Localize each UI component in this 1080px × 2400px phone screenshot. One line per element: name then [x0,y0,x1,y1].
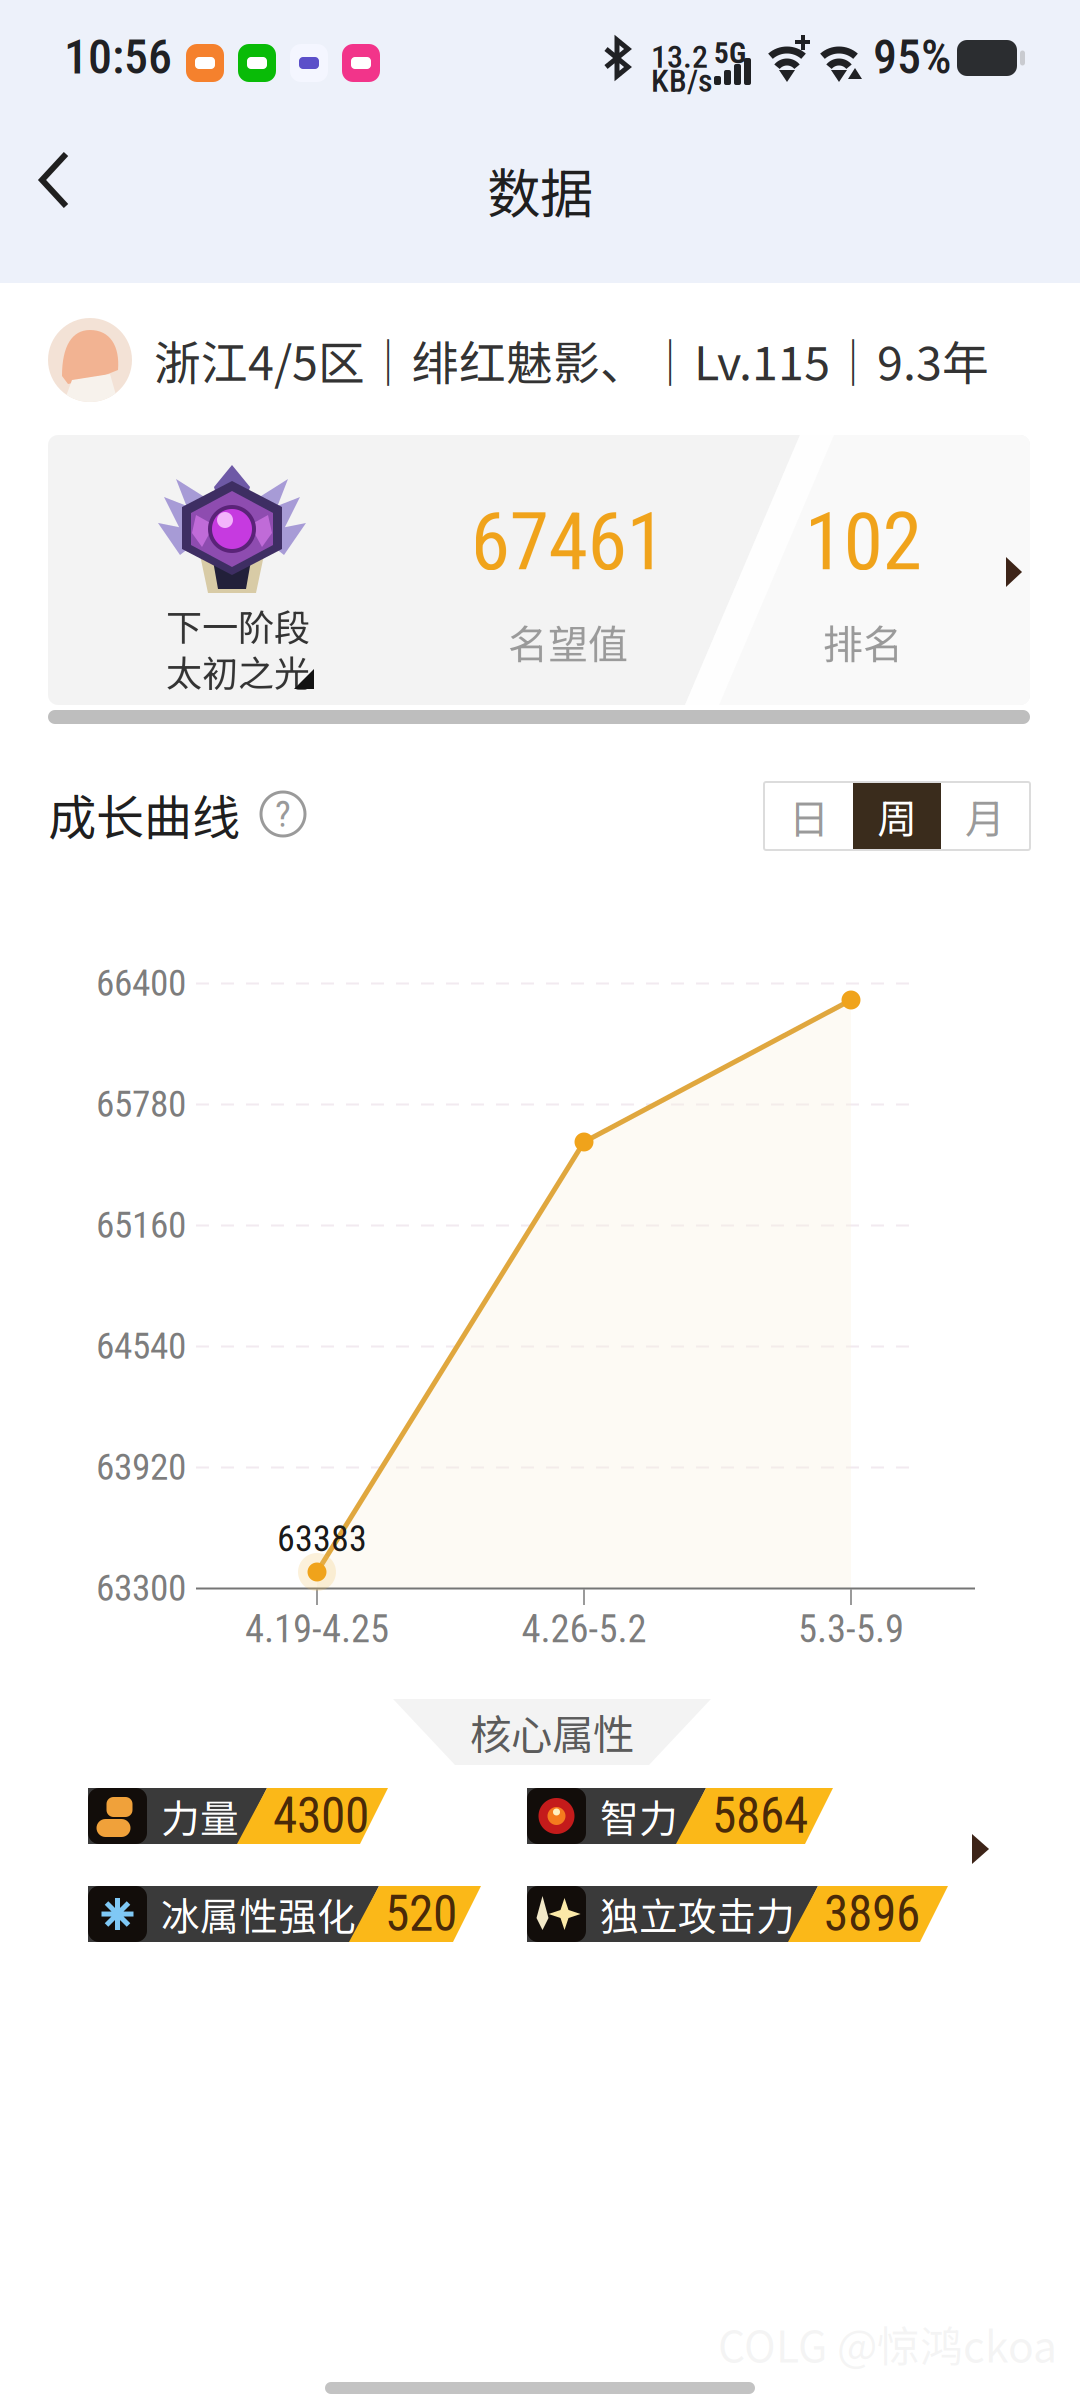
button[interactable]: 下一阶段 [48,435,1030,705]
staticText: 63300 [96,1566,186,1610]
button[interactable]: 力量 [88,1788,388,1844]
button[interactable]: More attributes [972,1834,1012,1874]
staticText: 月 [965,787,1005,845]
staticText: ? [275,792,291,836]
button[interactable]: 浙江4/5区｜绯红魅影、｜Lv.115｜9.3年 [0,315,1080,405]
staticText: 4.26-5.2 [521,1606,646,1652]
button[interactable]: Help [258,789,308,839]
staticText: 65160 [96,1203,186,1247]
staticText: 力量 [161,1788,239,1844]
staticText: 65780 [96,1082,186,1126]
staticText: 独立攻击力 [600,1886,795,1942]
button[interactable]: 周 [853,783,941,849]
staticText: 5G [714,36,746,70]
staticText: 5864 [712,1787,808,1845]
staticText: 67461 [470,495,665,589]
staticText: 4.19-4.25 [245,1606,389,1652]
staticText: 520 [385,1885,457,1943]
staticText: 4300 [273,1787,369,1845]
staticText: 63920 [96,1445,186,1489]
staticText: 周 [877,787,917,845]
staticText: KB/s [651,62,713,99]
staticText: 排名 [823,613,903,671]
button[interactable]: 智力 [527,1788,833,1844]
staticText: 下一阶段 [166,599,310,651]
staticText: 核心属性 [470,1702,634,1762]
staticText: 13.2 [651,38,708,75]
staticText: 冰属性强化 [161,1886,356,1942]
button[interactable]: 月 [941,783,1029,849]
staticText: 日 [789,787,829,845]
staticText: 66400 [96,961,186,1005]
staticText: 10:56 [64,29,172,85]
staticText: 浙江4/5区｜绯红魅影、｜Lv.115｜9.3年 [154,326,989,394]
staticText: 数据 [487,151,593,229]
button[interactable]: 冰属性强化 [88,1886,481,1942]
staticText: 64540 [96,1324,186,1368]
button[interactable]: 独立攻击力 [527,1886,948,1942]
staticText: 102 [804,495,921,589]
staticText: 3896 [824,1885,920,1943]
staticText: 太初之光 [166,645,310,697]
staticText: 智力 [600,1788,678,1844]
staticText: 63383 [277,1518,367,1560]
staticText: 成长曲线 [48,779,240,849]
staticText: COLG @惊鸿ckoa [718,2313,1057,2375]
button[interactable]: 日 [765,783,853,849]
button[interactable]: Back [30,142,140,242]
staticText: 95% [873,29,952,85]
staticText: 名望值 [508,613,628,671]
staticText: 5.3-5.9 [798,1606,904,1652]
